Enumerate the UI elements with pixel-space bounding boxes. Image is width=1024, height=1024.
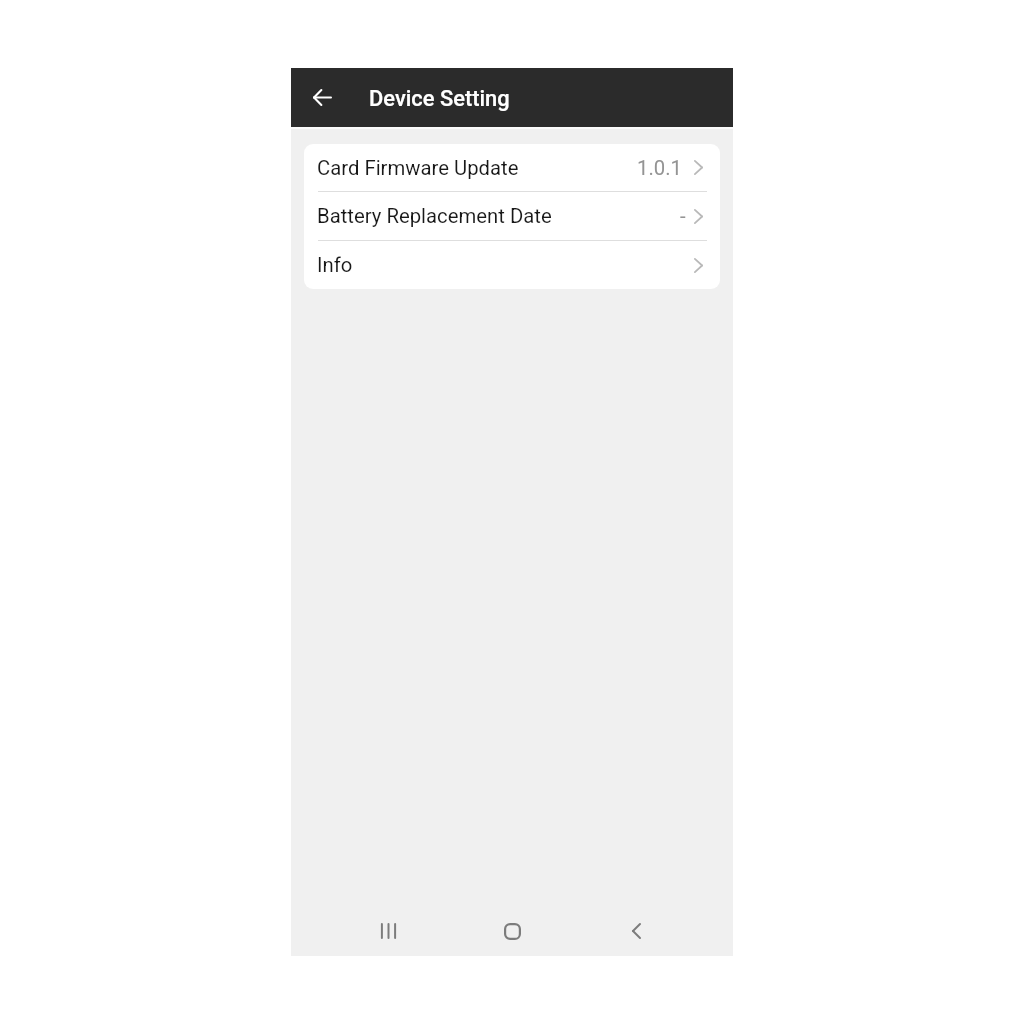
- button[interactable]: Navigate up: [299, 68, 345, 127]
- button[interactable]: Home: [450, 910, 574, 952]
- staticText: Device Setting: [369, 86, 510, 112]
- staticText: Info: [317, 253, 353, 277]
- staticText: 1.0.1: [637, 156, 682, 180]
- button[interactable]: Info: [304, 241, 720, 289]
- button[interactable]: Back: [574, 910, 698, 952]
- button[interactable]: Recent apps: [326, 910, 450, 952]
- staticText: Battery Replacement Date: [317, 204, 552, 228]
- staticText: Card Firmware Update: [317, 156, 519, 180]
- button[interactable]: Card Firmware Update: [304, 144, 720, 192]
- button[interactable]: Battery Replacement Date: [304, 192, 720, 241]
- staticText: -: [680, 204, 686, 228]
